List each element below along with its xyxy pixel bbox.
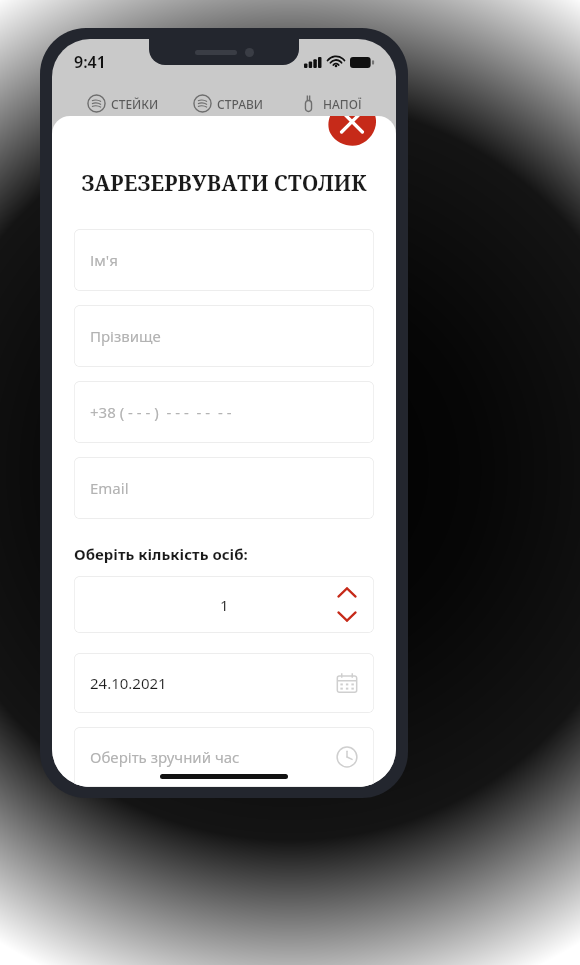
staticText: Оберіть зручний час [90,747,240,767]
button[interactable]: Decrease guests [334,608,360,625]
button[interactable]: Оберіть зручний час [74,727,374,787]
staticText: +38 ( - - - ) - - - - - - - [90,402,232,422]
button[interactable]: 24.10.2021 [74,653,374,713]
other: Pick time [336,746,358,768]
staticText: ЗАРЕЗЕРВУВАТИ СТОЛИК [74,169,374,198]
button[interactable]: Прізвище [74,305,374,367]
button[interactable]: СТЕЙКИ [87,94,159,113]
staticText: 9:41 [74,51,106,73]
staticText: Прізвище [90,326,161,346]
staticText: СТЕЙКИ [111,96,159,112]
button[interactable]: Close [326,116,378,146]
button[interactable]: НАПОЇ [299,94,362,113]
other: Pick date [336,672,358,694]
button[interactable]: СТРАВИ [193,94,264,113]
staticText: Оберіть кількість осіб: [74,544,248,564]
staticText: СТРАВИ [217,96,264,112]
staticText: Email [90,478,129,498]
staticText: Ім'я [90,250,118,270]
button[interactable]: Increase guests [334,584,360,601]
button[interactable]: Ім'я [74,229,374,291]
button[interactable]: Email [74,457,374,519]
staticText: 1 [220,595,229,615]
staticText: 24.10.2021 [90,673,167,693]
button[interactable]: +38 ( - - - ) - - - - - - - [74,381,374,443]
staticText: НАПОЇ [323,96,362,112]
